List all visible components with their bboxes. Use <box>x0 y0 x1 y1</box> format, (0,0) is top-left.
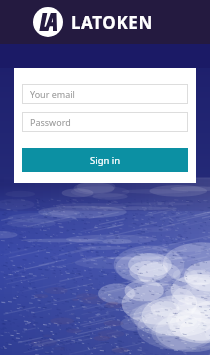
button[interactable]: Your email <box>22 84 188 104</box>
button[interactable]: LATOKEN logo <box>0 0 210 44</box>
staticText: Your email <box>30 88 75 100</box>
other: LATOKEN logo <box>33 7 63 37</box>
staticText: LATOKEN <box>71 11 153 34</box>
staticText: Password <box>30 116 71 128</box>
button[interactable]: Password <box>22 112 188 132</box>
button[interactable]: Sign in <box>22 148 188 172</box>
staticText: Sign in <box>90 154 121 167</box>
